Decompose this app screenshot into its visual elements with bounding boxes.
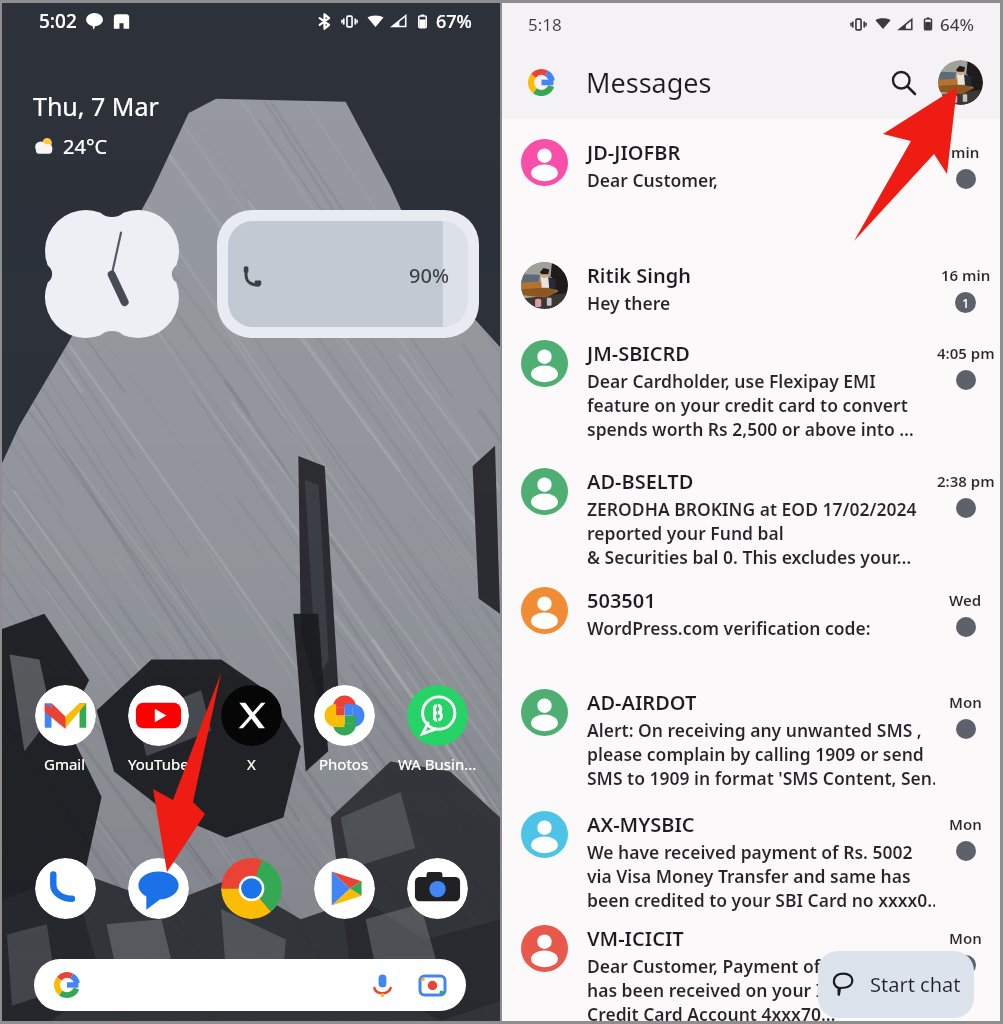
- button[interactable]: app: [209, 858, 293, 919]
- button[interactable]: AX-MYSBIC: [502, 808, 1000, 920]
- staticText: spends worth Rs 2,500 or above into …: [587, 417, 914, 441]
- staticText: please complain by calling 1909 or send: [587, 742, 924, 766]
- staticText: Thu, 7 Mar: [33, 89, 159, 123]
- button[interactable]: WA Busin...: [395, 685, 479, 774]
- staticText: Alert: On receiving any unwanted SMS ,: [587, 718, 922, 742]
- staticText: Start chat: [870, 971, 961, 998]
- button[interactable]: AD-AIRDOT: [502, 686, 1000, 798]
- staticText: We have received payment of Rs. 5002: [587, 840, 913, 864]
- button[interactable]: AD-BSELTD: [502, 465, 1000, 577]
- button[interactable]: Ritik Singh: [502, 259, 1000, 333]
- staticText: 90%: [409, 262, 449, 289]
- button[interactable]: JD-JIOFBR: [502, 136, 1000, 210]
- staticText: JD-JIOFBR: [587, 139, 681, 166]
- staticText: JM-SBICRD: [587, 340, 690, 367]
- staticText: reported your Fund bal: [587, 521, 784, 545]
- staticText: min: [951, 142, 980, 162]
- button[interactable]: VM-ICICIT: [502, 922, 1000, 1024]
- button[interactable]: Phone battery 90 percent: [217, 210, 479, 338]
- staticText: Wed: [949, 590, 982, 610]
- staticText: Dear Customer, Payment of Rs: [587, 954, 845, 978]
- staticText: Ritik Singh: [587, 262, 691, 289]
- staticText: via Visa Money Transfer and same has: [587, 864, 911, 888]
- button[interactable]: JM-SBICRD: [502, 337, 1000, 449]
- staticText: 64%: [940, 13, 974, 36]
- staticText: WordPress.com verification code:: [587, 616, 871, 640]
- staticText: VM-ICICIT: [587, 925, 684, 952]
- staticText: 4:05 pm: [937, 343, 995, 363]
- staticText: has been received on your IC: [587, 978, 834, 1002]
- staticText: Hey there: [587, 291, 671, 315]
- button[interactable]: 503501: [502, 584, 1000, 658]
- button[interactable]: Search: [34, 959, 466, 1011]
- staticText: 2:38 pm: [937, 471, 995, 491]
- button[interactable]: app: [395, 858, 479, 919]
- staticText: 5:02: [39, 8, 77, 34]
- staticText: YouTube: [128, 754, 189, 774]
- button[interactable]: app: [302, 858, 386, 919]
- staticText: AD-BSELTD: [587, 468, 694, 495]
- staticText: Messages: [586, 64, 712, 101]
- staticText: been credited to your SBI Card no xxxx0…: [587, 888, 935, 912]
- button[interactable]: Thursday 7 March, 24 degrees: [33, 89, 159, 123]
- staticText: Mon: [949, 814, 982, 834]
- staticText: 67%: [436, 9, 472, 34]
- staticText: SMS to 1909 in format 'SMS Content, Sen…: [587, 766, 935, 790]
- staticText: ZERODHA BROKING at EOD 17/02/2024: [587, 497, 917, 521]
- staticText: & Securities bal 0. This excludes your…: [587, 545, 912, 569]
- staticText: 503501: [587, 587, 656, 614]
- staticText: feature on your credit card to convert: [587, 393, 908, 417]
- staticText: 5:18: [528, 13, 562, 36]
- staticText: Dear Customer,: [587, 168, 719, 192]
- staticText: WA Busin...: [398, 754, 477, 774]
- button[interactable]: X: [209, 685, 293, 774]
- staticText: Photos: [319, 754, 369, 774]
- staticText: Mon: [949, 692, 982, 712]
- button[interactable]: Search: [881, 60, 925, 104]
- staticText: 16 min: [941, 265, 991, 285]
- staticText: Dear Cardholder, use Flexipay EMI: [587, 369, 876, 393]
- button[interactable]: Gmail: [23, 685, 107, 774]
- staticText: Mon: [949, 928, 982, 948]
- staticText: Gmail: [44, 754, 86, 774]
- staticText: 24°C: [63, 133, 108, 160]
- button[interactable]: Start chat: [818, 951, 974, 1018]
- staticText: AD-AIRDOT: [587, 689, 697, 716]
- staticText: Credit Card Account 4xxx70…: [587, 1002, 836, 1024]
- button[interactable]: app: [116, 858, 200, 919]
- button[interactable]: YouTube: [116, 685, 200, 774]
- staticText: AX-MYSBIC: [587, 811, 695, 838]
- staticText: X: [247, 754, 256, 774]
- button[interactable]: app: [23, 858, 107, 919]
- button[interactable]: Account: [938, 60, 983, 105]
- button[interactable]: Photos: [302, 685, 386, 774]
- staticText: 1: [962, 294, 970, 312]
